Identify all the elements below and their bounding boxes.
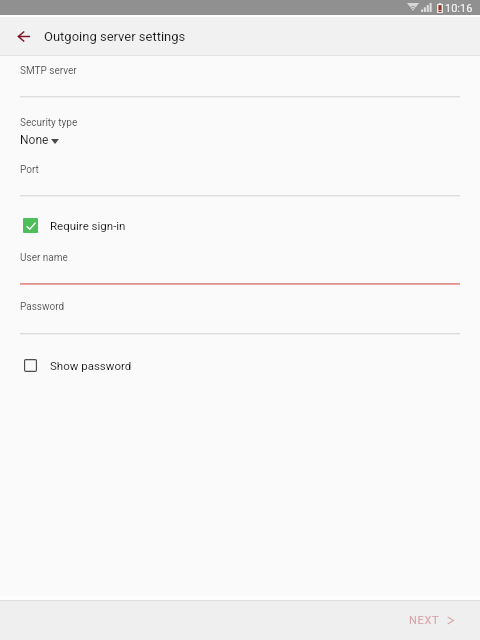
- button[interactable]: Password: [20, 296, 460, 334]
- button[interactable]: User name: [20, 247, 460, 285]
- staticText: 10:16: [445, 2, 473, 15]
- staticText: None: [20, 133, 49, 147]
- button[interactable]: Port: [20, 159, 460, 196]
- staticText: SMTP server: [20, 65, 77, 77]
- button[interactable]: SMTP server: [20, 60, 460, 98]
- button[interactable]: Back: [6, 18, 42, 54]
- staticText: User name: [20, 252, 68, 264]
- staticText: Show password: [50, 359, 132, 372]
- button[interactable]: NEXT: [395, 607, 480, 634]
- button[interactable]: Show password: [0, 358, 480, 373]
- staticText: Require sign-in: [50, 219, 126, 232]
- staticText: Security type: [20, 117, 78, 129]
- staticText: Password: [20, 301, 65, 313]
- button[interactable]: Require sign-in: [0, 218, 480, 233]
- staticText: Outgoing server settings: [44, 29, 186, 44]
- staticText: NEXT: [409, 614, 440, 627]
- staticText: Port: [20, 164, 39, 176]
- button[interactable]: None: [0, 133, 480, 147]
